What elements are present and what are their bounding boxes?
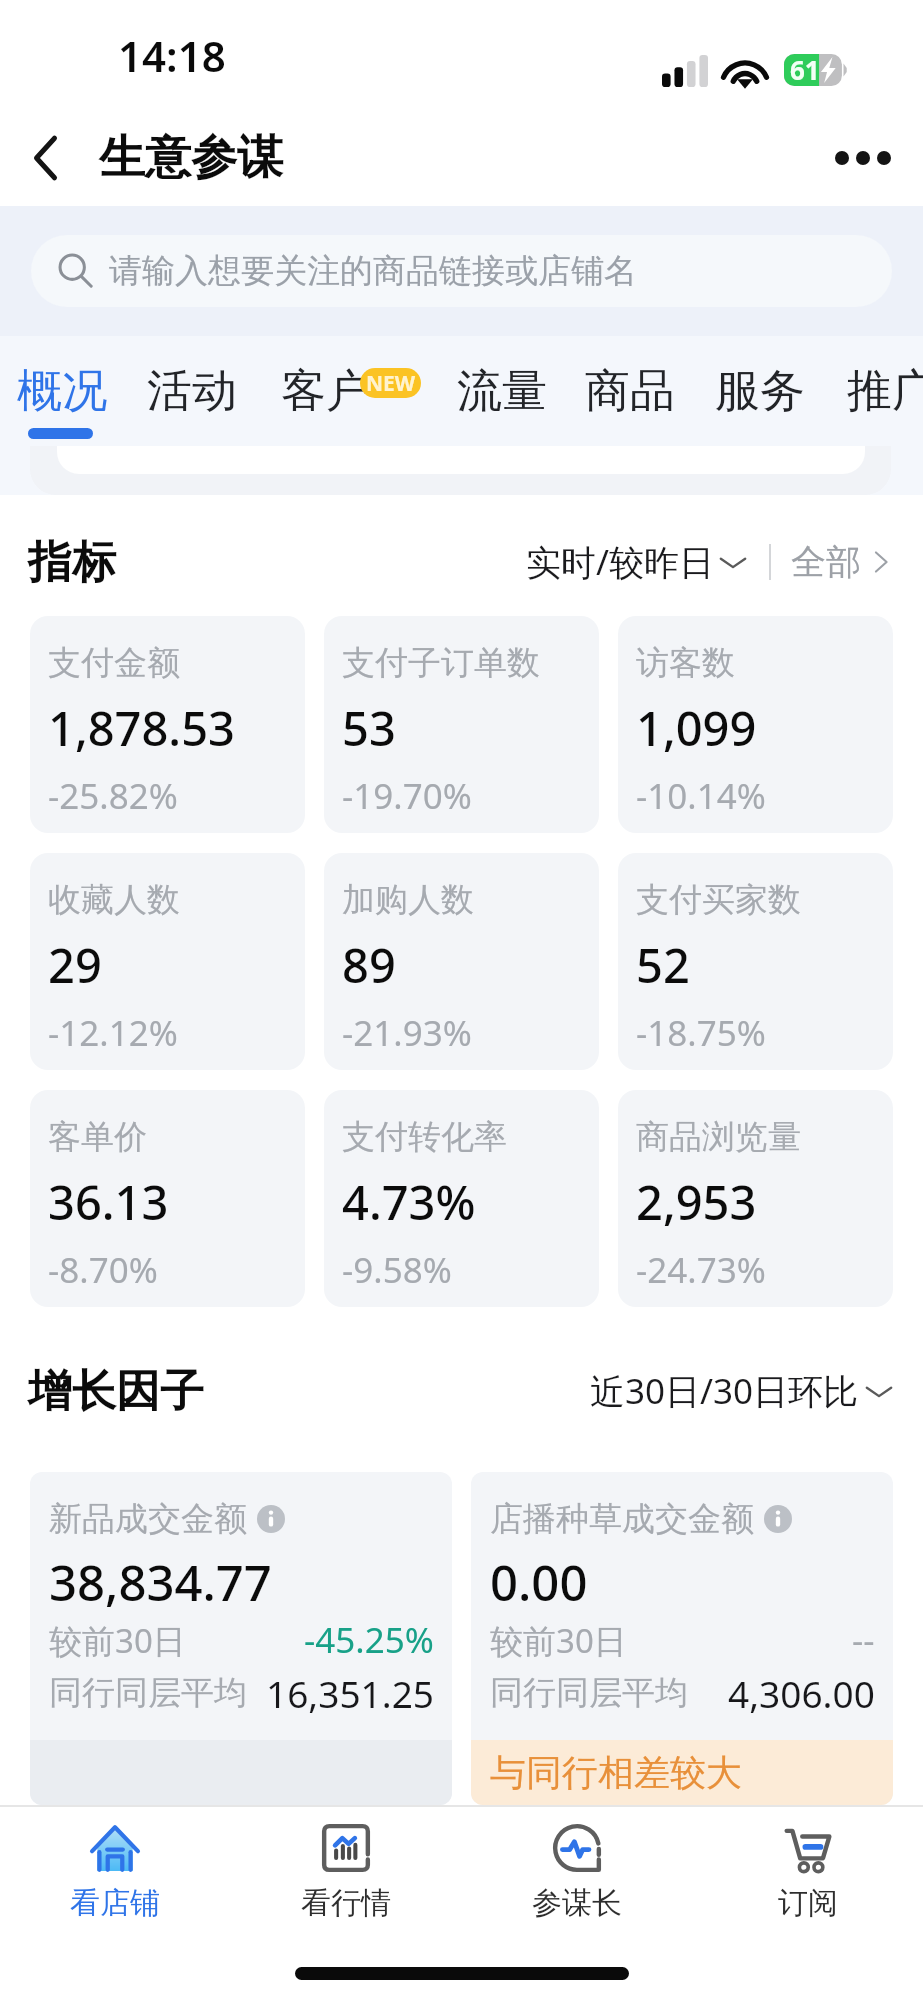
staticText: 支付子订单数 — [342, 642, 540, 684]
staticText: 与同行相差较大 — [490, 1750, 742, 1795]
staticText: 服务 — [715, 363, 805, 420]
staticText: -9.58% — [342, 1246, 452, 1294]
staticText: 推广 — [847, 363, 923, 420]
staticText: -45.25% — [304, 1616, 434, 1664]
staticText: 指标 — [28, 535, 116, 590]
staticText: 16,351.25 — [266, 1668, 434, 1718]
staticText: 2,953 — [636, 1170, 757, 1234]
staticText: 店播种草成交金额 — [490, 1498, 754, 1540]
staticText: 客户 — [281, 363, 371, 420]
button[interactable]: 看店铺 — [0, 1807, 230, 1928]
staticText: 实时/较昨日 — [526, 538, 715, 586]
staticText: 参谋长 — [532, 1884, 622, 1922]
button[interactable]: 支付转化率 — [324, 1090, 599, 1307]
staticText: 36.13 — [48, 1170, 169, 1234]
button[interactable]: 全部 — [791, 540, 895, 584]
button[interactable]: 近30日/30日环比 — [590, 1367, 895, 1415]
button[interactable]: 概况 — [0, 336, 125, 446]
staticText: -25.82% — [48, 772, 178, 820]
staticText: -19.70% — [342, 772, 472, 820]
staticText: 52 — [636, 933, 690, 997]
staticText: -8.70% — [48, 1246, 158, 1294]
staticText: -21.93% — [342, 1009, 472, 1057]
button[interactable]: 收藏人数 — [30, 853, 305, 1070]
staticText: 近30日/30日环比 — [590, 1367, 859, 1415]
button[interactable]: Back — [8, 121, 82, 195]
staticText: 较前30日 — [490, 1618, 627, 1663]
staticText: 全部 — [791, 540, 861, 584]
button[interactable]: 支付买家数 — [618, 853, 893, 1070]
staticText: 商品 — [585, 363, 675, 420]
staticText: 收藏人数 — [48, 879, 180, 921]
button[interactable]: 推广 — [829, 336, 923, 446]
staticText: 同行同层平均 — [490, 1672, 688, 1714]
button[interactable]: 实时/较昨日 — [526, 538, 749, 586]
staticText: 支付买家数 — [636, 879, 801, 921]
button[interactable]: 服务 — [697, 336, 823, 446]
staticText: -- — [852, 1616, 875, 1664]
staticText: 订阅 — [778, 1884, 838, 1922]
staticText: 支付转化率 — [342, 1116, 507, 1158]
staticText: 支付金额 — [48, 642, 180, 684]
staticText: 新品成交金额 — [49, 1498, 247, 1540]
staticText: 29 — [48, 933, 102, 997]
button[interactable]: 请输入想要关注的商品链接或店铺名 — [31, 235, 892, 307]
staticText: 14:18 — [118, 27, 226, 84]
staticText: 客单价 — [48, 1116, 147, 1158]
staticText: -12.12% — [48, 1009, 178, 1057]
staticText: 1,099 — [636, 696, 757, 760]
staticText: 商品浏览量 — [636, 1116, 801, 1158]
button[interactable]: 商品 — [567, 336, 693, 446]
button[interactable]: 加购人数 — [324, 853, 599, 1070]
staticText: 请输入想要关注的商品链接或店铺名 — [109, 250, 637, 292]
staticText: 增长因子 — [28, 1364, 204, 1419]
button[interactable]: 流量 — [439, 336, 565, 446]
staticText: 生意参谋 — [99, 129, 283, 187]
button[interactable]: 客户 — [263, 336, 389, 446]
staticText: 89 — [342, 933, 396, 997]
staticText: 活动 — [147, 363, 237, 420]
staticText: 4,306.00 — [728, 1668, 875, 1718]
staticText: 较前30日 — [49, 1618, 186, 1663]
button[interactable]: 活动 — [129, 336, 255, 446]
button[interactable]: 客单价 — [30, 1090, 305, 1307]
button[interactable]: 新品成交金额 — [30, 1472, 452, 1805]
button[interactable]: More options — [823, 118, 903, 198]
staticText: 流量 — [457, 363, 547, 420]
staticText: 4.73% — [342, 1170, 476, 1234]
staticText: 看店铺 — [70, 1884, 160, 1922]
button[interactable]: 看行情 — [230, 1807, 461, 1928]
staticText: 加购人数 — [342, 879, 474, 921]
staticText: 概况 — [17, 363, 107, 420]
staticText: 看行情 — [301, 1884, 391, 1922]
staticText: 访客数 — [636, 642, 735, 684]
button[interactable]: 支付金额 — [30, 616, 305, 833]
staticText: -10.14% — [636, 772, 766, 820]
staticText: 0.00 — [490, 1549, 588, 1616]
staticText: -18.75% — [636, 1009, 766, 1057]
staticText: 同行同层平均 — [49, 1672, 247, 1714]
button[interactable]: 访客数 — [618, 616, 893, 833]
staticText: 38,834.77 — [49, 1549, 272, 1616]
button[interactable]: 店播种草成交金额 — [471, 1472, 893, 1805]
staticText: 61 — [790, 52, 820, 87]
staticText: 1,878.53 — [48, 696, 235, 760]
staticText: NEW — [366, 369, 416, 398]
staticText: -24.73% — [636, 1246, 766, 1294]
button[interactable]: 商品浏览量 — [618, 1090, 893, 1307]
button[interactable]: 支付子订单数 — [324, 616, 599, 833]
button[interactable]: 订阅 — [692, 1807, 923, 1928]
staticText: 53 — [342, 696, 396, 760]
button[interactable]: 参谋长 — [461, 1807, 692, 1928]
